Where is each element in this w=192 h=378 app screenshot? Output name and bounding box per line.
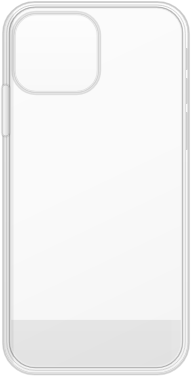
- button[interactable]: Clear transparent phone case product pho…: [0, 0, 192, 378]
